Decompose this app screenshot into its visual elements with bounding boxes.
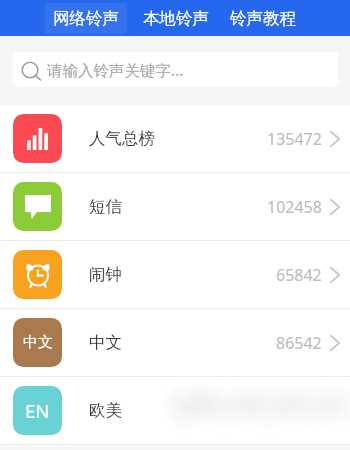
staticText: 铃声教程 [230,8,296,29]
staticText: 闹钟 [89,264,122,285]
staticText: 65842 [276,264,322,286]
staticText: 中文 [89,332,122,353]
button[interactable]: EN [0,377,350,444]
button[interactable]: 人气总榜 [0,105,350,172]
button[interactable]: 中文 [0,309,350,376]
staticText: 本地铃声 [143,8,209,29]
staticText: 中文 [23,333,53,352]
button[interactable]: 铃声教程 [230,3,296,34]
staticText: 请输入铃声关键字... [47,59,184,80]
staticText: 短信 [89,196,122,217]
staticText: EN [25,398,50,423]
staticText: 欧美 [89,400,122,421]
button[interactable]: 网络铃声 [45,3,127,34]
button[interactable]: 闹钟 [0,241,350,308]
staticText: 135472 [267,128,322,150]
staticText: 网络铃声 [53,8,119,29]
button[interactable]: 本地铃声 [143,3,209,34]
other: Search [21,59,43,81]
staticText: 102458 [267,196,322,218]
button[interactable]: 短信 [0,173,350,240]
button[interactable]: Search [13,52,338,87]
staticText: 86542 [276,332,322,354]
staticText: 人气总榜 [89,128,155,149]
